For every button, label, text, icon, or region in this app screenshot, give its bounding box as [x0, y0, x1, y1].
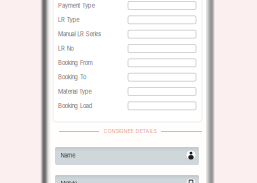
staticText: Manual LR Series: [58, 31, 101, 38]
staticText: Mobile: [60, 180, 77, 183]
button[interactable]: [128, 30, 196, 38]
staticText: LR No: [58, 45, 73, 52]
button[interactable]: [128, 1, 196, 9]
staticText: CONSIGNEE DETAILS: [103, 128, 156, 134]
button[interactable]: [128, 44, 196, 52]
button[interactable]: Mobile: [55, 175, 199, 183]
staticText: Booking From: [58, 59, 93, 66]
staticText: Booking Load: [58, 102, 93, 109]
button[interactable]: [128, 87, 196, 95]
staticText: Payment Type: [58, 2, 95, 9]
button[interactable]: [128, 59, 196, 67]
staticText: Booking To: [58, 74, 86, 81]
staticText: Material Type: [58, 88, 92, 95]
staticText: Name: [60, 152, 75, 159]
button[interactable]: [128, 16, 196, 24]
button[interactable]: [128, 102, 196, 110]
button[interactable]: [128, 73, 196, 81]
button[interactable]: Name: [55, 147, 199, 165]
staticText: LR Type: [58, 16, 79, 23]
